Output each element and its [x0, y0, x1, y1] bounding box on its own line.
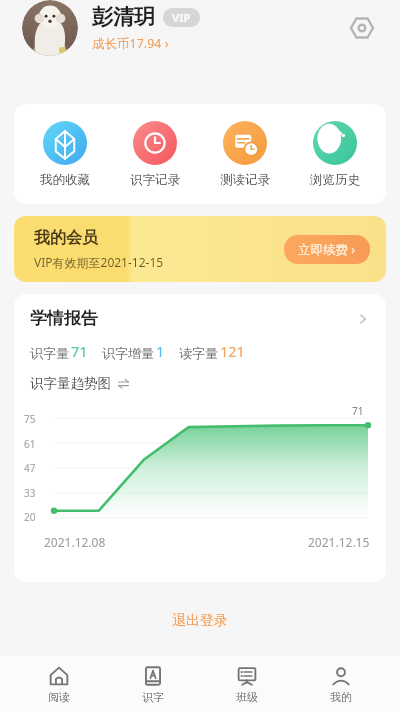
staticText: 浏览历史: [310, 172, 360, 188]
staticText: 71: [352, 404, 364, 418]
button[interactable]: 浏览历史: [290, 115, 380, 194]
staticText: 61: [24, 437, 36, 451]
staticText: 71: [71, 341, 88, 361]
staticText: 47: [24, 461, 36, 475]
staticText: 我的收藏: [40, 172, 90, 188]
button[interactable]: 识字记录: [110, 115, 200, 194]
button[interactable]: 我的: [306, 661, 376, 708]
staticText: 读字量: [179, 345, 218, 361]
button[interactable]: [22, 0, 78, 56]
staticText: 识字量: [30, 345, 69, 361]
staticText: 成长币17.94 ›: [92, 35, 169, 52]
button[interactable]: 退出登录: [158, 608, 242, 634]
button[interactable]: 测读记录: [200, 115, 290, 194]
button[interactable]: 彭清玥: [92, 4, 342, 52]
staticText: 学情报告: [30, 308, 98, 329]
staticText: 1: [156, 341, 165, 361]
button[interactable]: 识字: [118, 661, 188, 708]
button[interactable]: 学情报告: [14, 308, 386, 329]
staticText: 阅读: [48, 690, 70, 704]
button[interactable]: 识字量趋势图: [30, 375, 130, 392]
button[interactable]: 班级: [212, 661, 282, 708]
button[interactable]: 我的会员: [14, 216, 386, 282]
staticText: 识字记录: [130, 172, 180, 188]
button[interactable]: 阅读: [24, 661, 94, 708]
staticText: 20: [24, 510, 36, 524]
staticText: 班级: [236, 690, 258, 704]
staticText: 我的会员: [34, 228, 98, 248]
staticText: 测读记录: [220, 172, 270, 188]
staticText: 识字量趋势图: [30, 375, 111, 392]
staticText: 识字: [142, 690, 164, 704]
staticText: VIP: [172, 10, 191, 25]
button[interactable]: Settings: [342, 8, 382, 48]
staticText: 75: [24, 412, 36, 426]
staticText: 121: [220, 341, 245, 361]
button[interactable]: 我的收藏: [20, 115, 110, 194]
staticText: 识字增量: [102, 345, 154, 361]
staticText: 2021.12.15: [308, 534, 370, 550]
staticText: 彭清玥: [92, 4, 155, 30]
staticText: VIP有效期至2021-12-15: [34, 254, 164, 270]
staticText: 立即续费 ›: [298, 241, 356, 258]
staticText: 退出登录: [172, 612, 228, 630]
button[interactable]: 立即续费 ›: [284, 235, 370, 264]
staticText: 我的: [330, 690, 352, 704]
staticText: 33: [24, 486, 36, 500]
staticText: 2021.12.08: [44, 534, 106, 550]
